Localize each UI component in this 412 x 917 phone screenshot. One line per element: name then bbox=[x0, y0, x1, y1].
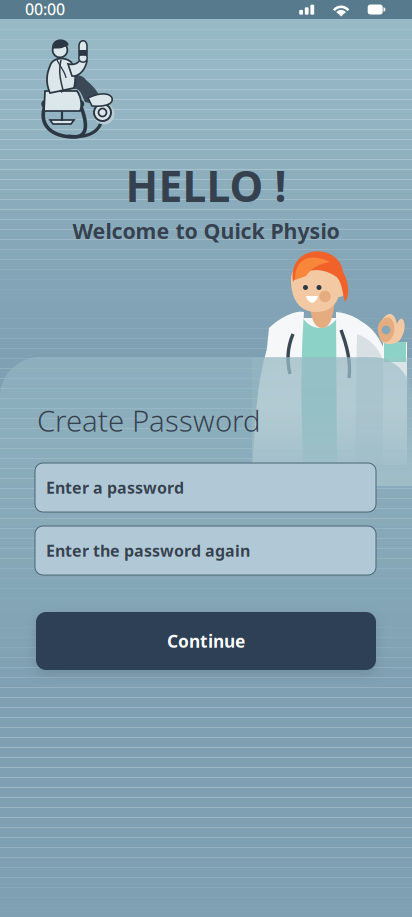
staticText: 00:00 bbox=[25, 0, 65, 20]
staticText: Enter the password again bbox=[46, 540, 250, 561]
staticText: Welcome to Quick Physio bbox=[72, 217, 339, 245]
button[interactable]: Enter a password bbox=[35, 463, 376, 512]
button[interactable]: Continue bbox=[36, 612, 376, 670]
staticText: Continue bbox=[167, 629, 245, 652]
button[interactable]: Enter the password again bbox=[35, 526, 376, 575]
staticText: Enter a password bbox=[46, 477, 184, 498]
staticText: Create Password bbox=[37, 401, 261, 440]
staticText: HELLO ! bbox=[125, 157, 286, 214]
